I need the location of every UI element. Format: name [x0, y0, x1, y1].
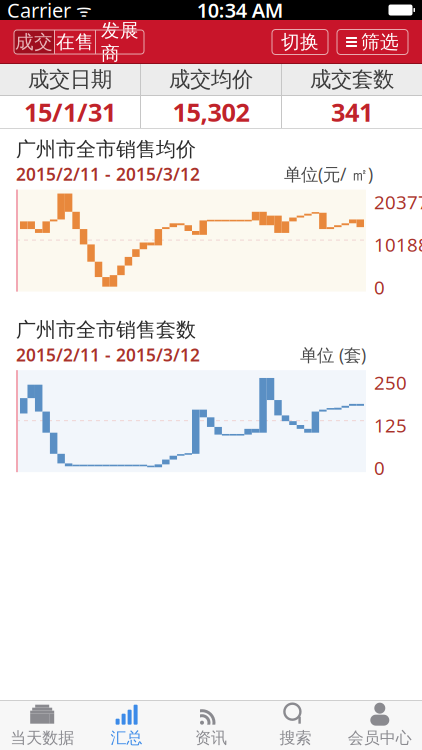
staticText: 2015/2/11 - 2015/3/12: [16, 343, 200, 366]
staticText: 成交套数: [310, 66, 394, 93]
staticText: 成交日期: [28, 66, 112, 93]
staticText: 广州市全市销售均价: [16, 137, 196, 162]
staticText: 0: [374, 455, 385, 480]
staticText: 15,302: [172, 95, 249, 129]
button[interactable]: 成交: [14, 30, 54, 54]
staticText: 资讯: [195, 728, 227, 748]
staticText: 发展商: [101, 19, 139, 65]
staticText: 20377: [374, 190, 422, 214]
button[interactable]: 切换: [272, 29, 328, 54]
staticText: Carrier: [7, 0, 71, 23]
staticText: 成交: [15, 30, 53, 53]
staticText: 成交均价: [169, 66, 253, 93]
button[interactable]: 在售: [55, 30, 95, 54]
staticText: 会员中心: [348, 728, 412, 748]
staticText: 10:34 AM: [197, 0, 284, 23]
staticText: 125: [374, 413, 407, 438]
staticText: 在售: [56, 30, 94, 53]
staticText: 250: [374, 370, 407, 395]
staticText: 15/1/31: [24, 95, 116, 129]
button[interactable]: 当天数据: [0, 701, 84, 750]
button[interactable]: 会员中心: [338, 701, 422, 750]
button[interactable]: 资讯: [169, 701, 253, 750]
staticText: 汇总: [111, 728, 143, 748]
staticText: ᯤ: [71, 0, 92, 21]
staticText: 0: [374, 275, 385, 300]
staticText: 341: [331, 95, 373, 129]
staticText: 当天数据: [10, 728, 74, 748]
staticText: 单位 (套): [300, 343, 366, 366]
staticText: 2015/2/11 - 2015/3/12: [16, 163, 200, 186]
staticText: 单位(元/ ㎡): [284, 163, 373, 186]
staticText: 广州市全市销售套数: [16, 318, 196, 342]
button[interactable]: 搜索: [253, 701, 338, 750]
button[interactable]: 发展商: [96, 30, 144, 54]
staticText: 筛选: [361, 30, 399, 53]
staticText: 搜索: [279, 728, 311, 748]
staticText: 切换: [281, 30, 319, 53]
staticText: 10188: [374, 232, 422, 257]
button[interactable]: 汇总: [84, 701, 169, 750]
button[interactable]: 筛选: [337, 29, 408, 54]
